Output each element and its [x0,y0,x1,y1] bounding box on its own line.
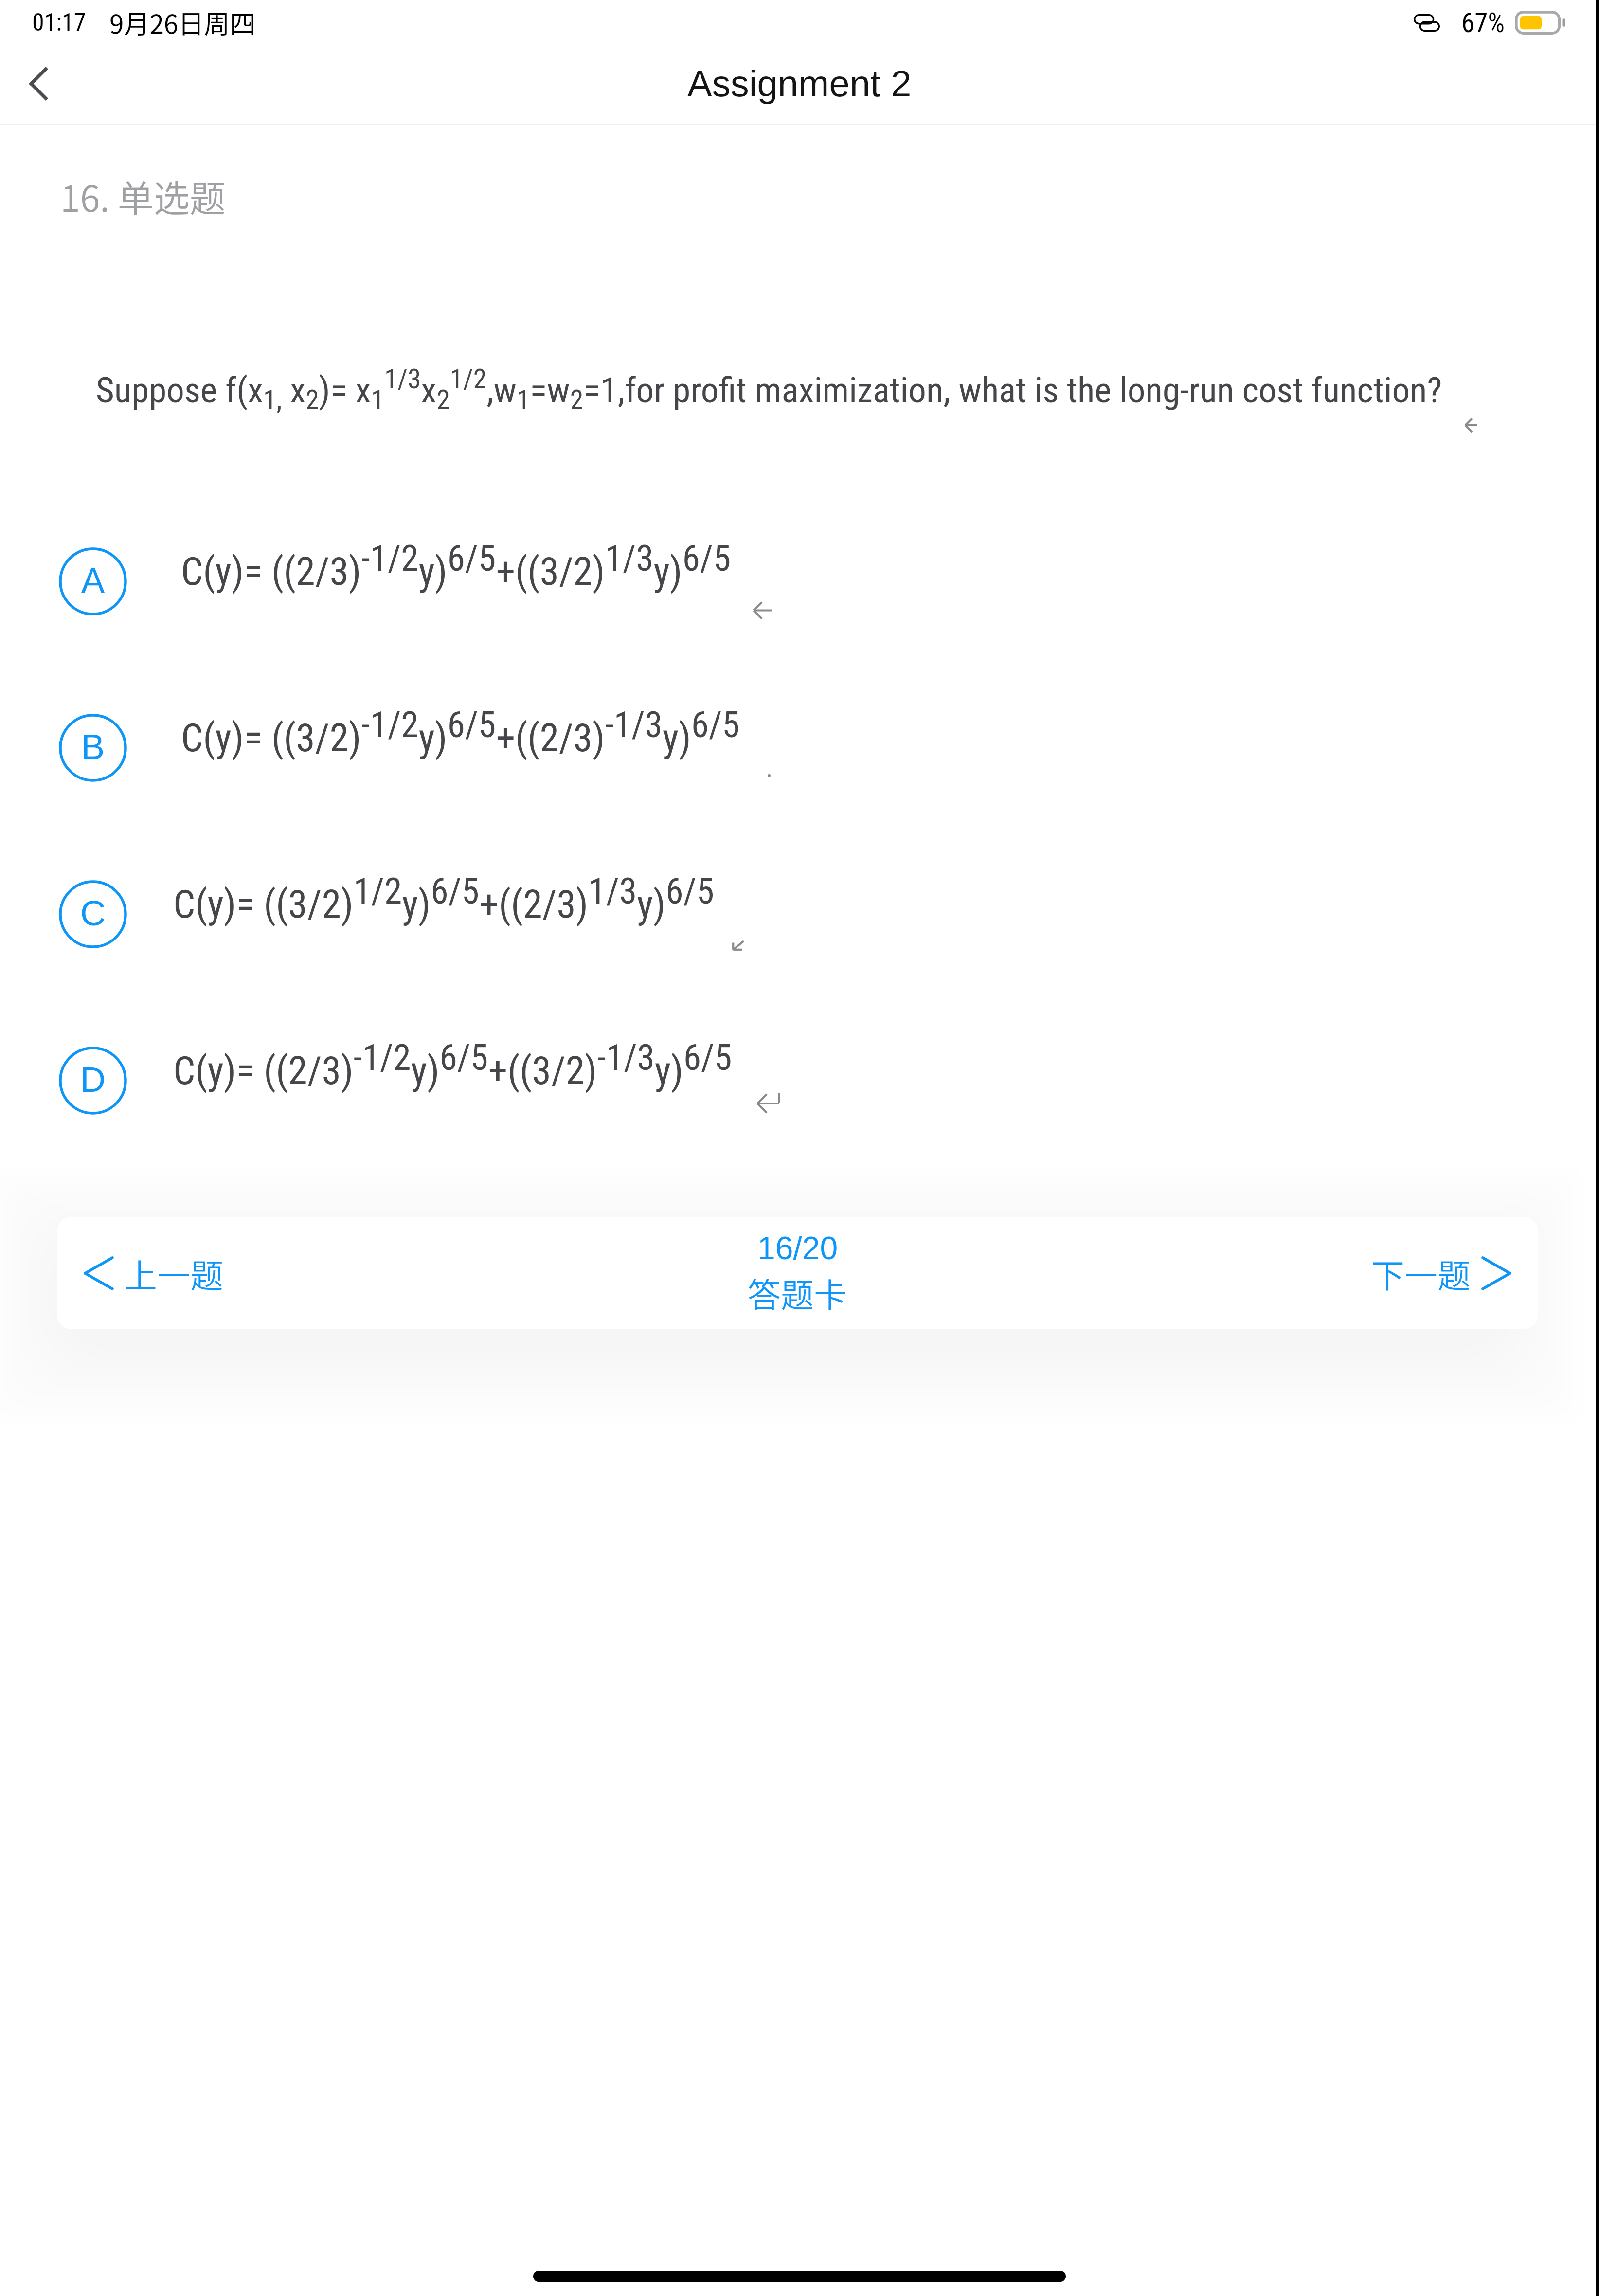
staticText: 上一题 [124,1249,224,1297]
staticText: 答题卡 [748,1269,847,1317]
staticText: Suppose f(x1, x2)= x11/3x21/2,w1=w2=1,fo… [96,363,1442,416]
staticText: C(y)= ((2/3)-1/2y)6/5+((3/2)1/3y)6/5 [181,538,731,594]
button[interactable]: D [0,1032,1599,1129]
staticText: C(y)= ((3/2)1/2y)6/5+((2/3)1/3y)6/5 [173,870,715,927]
staticText: A [81,561,105,600]
staticText: 16. 单选题 [60,170,226,222]
staticText: B [81,727,105,766]
staticText: Assignment 2 [687,63,912,104]
button[interactable]: A [0,533,1599,630]
staticText: 01:17 [32,8,86,37]
staticText: 67% [1461,7,1505,38]
button[interactable]: 下一题 [847,1217,1538,1329]
staticText: C [80,894,106,933]
staticText: C(y)= ((2/3)-1/2y)6/5+((3/2)-1/3y)6/5 [173,1037,732,1093]
button[interactable]: 上一题 [57,1217,748,1329]
button[interactable]: C [0,866,1599,963]
button[interactable]: Back [10,57,63,110]
staticText: 9月26日周四 [109,4,256,41]
button[interactable]: 16/20 [748,1230,847,1317]
staticText: 16/20 [757,1230,838,1266]
staticText: D [80,1060,106,1099]
button[interactable]: B [0,699,1599,796]
staticText: 下一题 [1371,1249,1471,1297]
staticText: C(y)= ((3/2)-1/2y)6/5+((2/3)-1/3y)6/5 [181,704,740,760]
